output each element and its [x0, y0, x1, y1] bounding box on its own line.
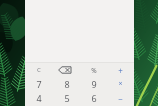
button[interactable]: 4 [25, 91, 53, 105]
button[interactable]: − [107, 91, 134, 105]
button[interactable]: × [107, 77, 134, 91]
staticText: 6 [91, 92, 97, 104]
staticText: 8 [64, 78, 70, 90]
button[interactable]: + [107, 63, 134, 77]
staticText: + [118, 65, 123, 76]
button[interactable]: 7 [25, 77, 53, 91]
button[interactable]: 5 [53, 91, 80, 105]
staticText: 7 [36, 78, 42, 90]
staticText: × [118, 79, 123, 89]
staticText: 5 [64, 92, 70, 104]
staticText: − [118, 93, 123, 104]
button[interactable]: C [25, 63, 53, 77]
button[interactable]: % [80, 63, 107, 77]
button[interactable]: 8 [53, 77, 80, 91]
staticText: C [37, 66, 41, 74]
button[interactable]: 9 [80, 77, 107, 91]
staticText: % [91, 66, 97, 75]
staticText: 4 [36, 92, 42, 104]
staticText: 9 [91, 78, 97, 90]
button[interactable]: 6 [80, 91, 107, 105]
button[interactable]: Backspace [53, 63, 80, 77]
